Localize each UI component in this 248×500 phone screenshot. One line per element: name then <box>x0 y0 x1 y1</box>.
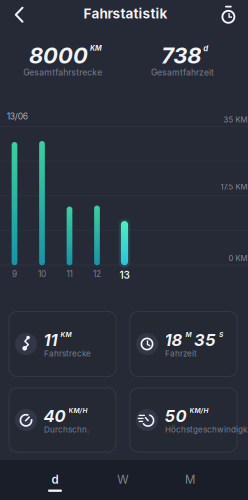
button[interactable]: Timer <box>214 1 244 31</box>
button[interactable]: M <box>156 460 223 500</box>
staticText: d <box>51 472 58 486</box>
staticText: d <box>203 44 208 53</box>
staticText: Durchschn. <box>44 425 89 434</box>
staticText: Fahrstatistik <box>83 5 167 22</box>
button[interactable]: W <box>89 460 156 500</box>
staticText: KM/H <box>189 406 208 414</box>
staticText: M <box>185 330 191 338</box>
staticText: 17.5 KM <box>220 182 247 191</box>
staticText: 35 KM <box>223 115 247 124</box>
staticText: Höchstgeschwindigk <box>165 425 247 434</box>
staticText: Gesamtfahrzeit <box>151 67 214 77</box>
staticText: KM/H <box>68 406 87 414</box>
staticText: W <box>117 472 128 486</box>
staticText: 40 <box>43 406 65 426</box>
staticText: 11 <box>43 330 57 350</box>
staticText: 13 <box>119 269 129 281</box>
staticText: 10 <box>38 269 46 279</box>
staticText: KM <box>60 330 71 338</box>
staticText: 12 <box>93 269 101 279</box>
staticText: 18 <box>164 330 182 350</box>
staticText: 0 KM <box>228 253 247 263</box>
staticText: Gesamtfahrstrecke <box>23 67 102 77</box>
staticText: 13/06 <box>7 111 28 121</box>
staticText: S <box>219 330 223 338</box>
staticText: 8000 <box>29 42 88 69</box>
staticText: 11 <box>66 269 72 279</box>
staticText: 35 <box>194 330 216 350</box>
staticText: Fahrstrecke <box>44 349 91 358</box>
staticText: KM <box>90 44 102 52</box>
staticText: Fahrzeit <box>165 349 197 358</box>
button[interactable]: d <box>21 460 88 500</box>
button[interactable]: Back <box>4 0 34 30</box>
staticText: M <box>185 472 195 486</box>
staticText: 9 <box>12 269 17 279</box>
staticText: 50 <box>164 406 186 426</box>
staticText: 738 <box>161 42 201 69</box>
